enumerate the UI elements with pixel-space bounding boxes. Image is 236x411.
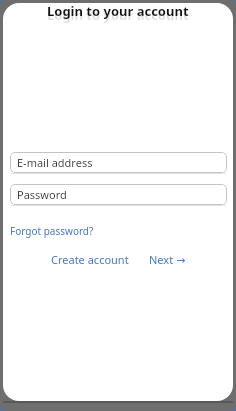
- button[interactable]: Create account: [51, 252, 129, 267]
- staticText: E-mail address: [17, 155, 93, 170]
- staticText: Login to your account: [47, 6, 189, 24]
- button[interactable]: Forgot password?: [10, 224, 94, 238]
- staticText: Next →: [149, 252, 186, 267]
- staticText: Password: [17, 187, 67, 202]
- button[interactable]: Next →: [149, 252, 186, 267]
- staticText: Login to your account: [47, 3, 189, 20]
- button[interactable]: E-mail address: [10, 152, 227, 173]
- staticText: Create account: [51, 252, 129, 267]
- button[interactable]: Password: [10, 184, 227, 205]
- staticText: Forgot password?: [10, 224, 94, 238]
